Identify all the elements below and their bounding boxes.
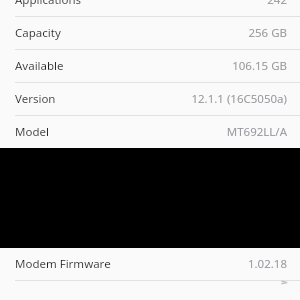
staticText: 12.1.1 (16C5050a) xyxy=(191,91,287,107)
button[interactable]: Modem Firmware xyxy=(0,248,300,280)
button[interactable]: SEID xyxy=(0,281,300,284)
staticText: 256 GB xyxy=(248,25,287,41)
staticText: Modem Firmware xyxy=(15,256,111,272)
staticText: 242 xyxy=(267,0,287,8)
staticText: Applications xyxy=(15,0,82,8)
button[interactable]: Version xyxy=(0,83,300,115)
staticText: MT692LL/A xyxy=(226,124,287,140)
staticText: Available xyxy=(15,58,64,74)
button[interactable]: Available xyxy=(0,50,300,82)
staticText: 1.02.18 xyxy=(247,256,287,272)
staticText: Capacity xyxy=(15,25,61,41)
button[interactable]: Model xyxy=(0,116,300,148)
button[interactable]: Capacity xyxy=(0,17,300,49)
staticText: Version xyxy=(15,91,56,107)
staticText: Model xyxy=(15,124,49,140)
button[interactable]: Applications xyxy=(0,0,300,16)
staticText: 106.15 GB xyxy=(232,58,287,74)
